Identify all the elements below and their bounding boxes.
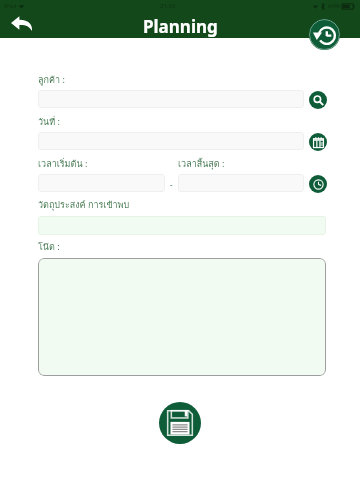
button[interactable]: Search [309, 91, 327, 109]
staticText: โน๊ต : [38, 240, 60, 254]
staticText: วันที่ : [38, 115, 60, 129]
button[interactable] [178, 174, 304, 192]
staticText: 64% [328, 2, 340, 10]
staticText: ลูกค้า : [38, 73, 65, 87]
button[interactable] [38, 216, 326, 235]
button[interactable]: Save [159, 402, 201, 444]
button[interactable] [38, 132, 304, 150]
button[interactable] [38, 90, 304, 108]
button[interactable]: Pick time [309, 175, 327, 193]
button[interactable] [38, 174, 165, 192]
button[interactable]: Back [6, 12, 38, 34]
staticText: 21:05 [160, 2, 176, 10]
button[interactable]: Pick date [309, 133, 327, 151]
staticText: วัตถุประสงค์ การเข้าพบ [38, 198, 130, 212]
staticText: Planning [143, 15, 218, 38]
button[interactable] [38, 258, 326, 376]
button[interactable]: History [309, 19, 340, 50]
staticText: เวลาเริ่มต้น : [38, 157, 88, 171]
staticText: เวลาสิ้นสุด : [178, 157, 225, 171]
staticText: iPad [4, 2, 17, 10]
staticText: - [170, 179, 173, 187]
